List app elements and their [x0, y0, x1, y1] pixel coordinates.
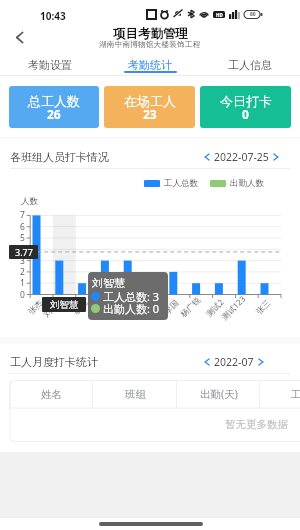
- staticText: 测试2: [203, 296, 226, 319]
- staticText: 1: [20, 277, 25, 289]
- staticText: 3: [20, 255, 25, 267]
- button[interactable]: 今日打卡: [200, 86, 291, 128]
- staticText: HD: [216, 12, 223, 18]
- staticText: 10:43: [40, 9, 66, 23]
- staticText: 0: [242, 106, 249, 122]
- staticText: 人数: [21, 196, 38, 207]
- staticText: 黄志: [117, 298, 135, 316]
- staticText: 工人总数: 3: [103, 289, 160, 304]
- staticText: 杨凡: [71, 298, 89, 316]
- staticText: 刘智慧: [41, 295, 65, 319]
- staticText: 26: [47, 106, 61, 122]
- staticText: 张三: [254, 298, 272, 316]
- button[interactable]: 工人信息: [200, 54, 300, 75]
- staticText: 王五: [140, 298, 158, 316]
- button[interactable]: Back: [4, 22, 34, 52]
- staticText: 23: [143, 106, 157, 122]
- button[interactable]: 考勤统计: [100, 54, 200, 75]
- staticText: 项目考勤管理: [113, 26, 188, 42]
- staticText: 今日打卡: [220, 93, 272, 109]
- staticText: 工人信息: [228, 58, 272, 72]
- staticText: 0: [20, 289, 25, 301]
- staticText: 出勤(天): [200, 387, 238, 401]
- staticText: 考勤设置: [28, 58, 72, 72]
- staticText: 张杰: [26, 298, 44, 316]
- button[interactable]: 考勤设置: [0, 54, 100, 75]
- staticText: 2: [20, 266, 25, 278]
- staticText: 6: [20, 221, 25, 233]
- staticText: 在场工人: [124, 93, 176, 109]
- staticText: 各班组人员打卡情况: [10, 150, 109, 164]
- staticText: 出勤人数: [230, 178, 264, 189]
- staticText: 暂无更多数据: [225, 418, 288, 431]
- button[interactable]: 2022-07: [204, 355, 264, 369]
- staticText: 刘智慧: [92, 276, 125, 290]
- button[interactable]: 在场工人: [104, 86, 195, 128]
- staticText: 总工人数: [28, 93, 80, 109]
- staticText: 湖南中南博物馆大楼装饰工程: [99, 39, 201, 49]
- staticText: 刘智慧: [50, 299, 79, 311]
- staticText: 5: [20, 232, 25, 244]
- button[interactable]: 总工人数: [9, 86, 99, 128]
- staticText: 工时: [291, 388, 300, 401]
- staticText: 出勤人数: 0: [103, 301, 160, 316]
- staticText: 班组: [125, 388, 146, 401]
- staticText: 工人月度打卡统计: [10, 355, 98, 369]
- staticText: 考勤统计: [128, 58, 172, 72]
- staticText: 7: [20, 209, 25, 221]
- staticText: 3.77: [15, 246, 33, 258]
- button[interactable]: 2022-07-25: [204, 150, 279, 164]
- staticText: 姓名: [41, 388, 62, 401]
- staticText: 2022-07-25: [214, 150, 269, 164]
- staticText: 80: [250, 11, 256, 18]
- staticText: 测试123: [219, 293, 248, 322]
- staticText: 李国: [162, 298, 180, 316]
- staticText: 2022-07: [214, 355, 254, 369]
- staticText: 测试: [94, 298, 112, 316]
- staticText: 杨广锐: [178, 295, 202, 319]
- staticText: 工人总数: [164, 178, 198, 189]
